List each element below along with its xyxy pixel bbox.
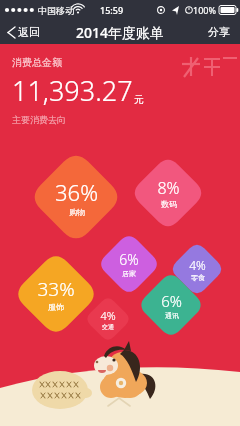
button[interactable]: 4% 零食 [170, 242, 224, 296]
button[interactable]: 36% 购物 [30, 151, 122, 243]
staticText: 零食 [191, 273, 205, 282]
staticText: 服饰 [48, 302, 64, 312]
button[interactable]: 4% 交通 [85, 296, 131, 342]
staticText: 2014年度账单 [76, 23, 165, 42]
staticText: 通讯 [165, 311, 179, 320]
staticText: 8% [157, 177, 180, 199]
staticText: 中国移动 [38, 5, 74, 16]
staticText: 交通 [102, 323, 114, 331]
staticText: 36% [55, 177, 98, 207]
staticText: 居家 [122, 269, 136, 278]
button[interactable]: 6% 居家 [98, 233, 160, 295]
staticText: 元 [134, 93, 144, 106]
staticText: 11,393.27 [12, 72, 133, 109]
staticText: 33% [37, 276, 75, 302]
staticText: 数码 [161, 199, 177, 209]
staticText: 返回 [18, 25, 40, 39]
staticText: 4% [100, 308, 116, 323]
staticText: 主要消费去向 [12, 114, 66, 125]
staticText: 4% [189, 257, 206, 273]
staticText: 消费总金额 [12, 56, 62, 69]
button[interactable]: 分享 [198, 20, 240, 44]
button[interactable]: 返回 [0, 21, 48, 43]
staticText: 购物 [69, 207, 85, 217]
staticText: 6% [161, 291, 182, 311]
staticText: 15:59 [100, 4, 124, 16]
staticText: 100% [193, 4, 216, 16]
button[interactable]: 33% 服饰 [14, 252, 98, 336]
button[interactable]: 6% 通讯 [138, 272, 204, 338]
button[interactable]: 8% 数码 [131, 156, 205, 230]
staticText: 6% [119, 250, 139, 269]
